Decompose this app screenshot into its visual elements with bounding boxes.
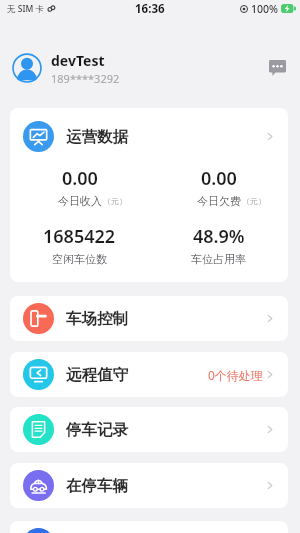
staticText: 无 SIM 卡 xyxy=(7,3,44,15)
staticText: 189****3292 xyxy=(51,71,120,86)
staticText: 今日收入 xyxy=(58,194,102,208)
staticText: 100% xyxy=(251,2,278,16)
staticText: 停车记录 xyxy=(66,420,128,440)
staticText: 运营数据 xyxy=(66,127,128,147)
staticText: 在停车辆 xyxy=(66,476,128,496)
staticText: 1685422 xyxy=(43,224,116,249)
button[interactable]: 更多功能 xyxy=(10,521,288,533)
staticText: （元） xyxy=(242,196,266,206)
staticText: devTest xyxy=(51,51,105,70)
staticText: 0.00 xyxy=(62,166,98,191)
staticText: 0.00 xyxy=(201,166,237,191)
staticText: 车位占用率 xyxy=(191,252,246,266)
button[interactable]: 车场控制 xyxy=(10,296,288,341)
staticText: 远程值守 xyxy=(66,365,128,385)
staticText: 0个待处理 xyxy=(208,367,263,383)
button[interactable]: 在停车辆 xyxy=(10,463,288,508)
staticText: 今日欠费 xyxy=(197,194,241,208)
staticText: 16:36 xyxy=(135,1,165,17)
staticText: 空闲车位数 xyxy=(52,252,107,266)
button[interactable]: 运营数据 xyxy=(10,108,288,282)
staticText: 车场控制 xyxy=(66,309,128,329)
button[interactable]: 停车记录 xyxy=(10,407,288,452)
staticText: （元） xyxy=(103,196,127,206)
button[interactable]: Messages xyxy=(265,56,289,80)
button[interactable]: 远程值守 xyxy=(10,352,288,397)
staticText: 48.9% xyxy=(193,224,245,249)
